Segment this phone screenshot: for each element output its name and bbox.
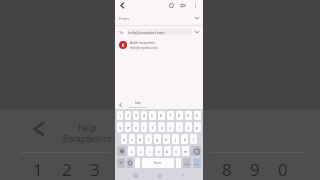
staticText: 3 bbox=[135, 113, 138, 118]
button[interactable]: More options bbox=[191, 1, 200, 10]
button[interactable]: n bbox=[173, 146, 180, 156]
button[interactable]: r bbox=[141, 122, 147, 132]
button[interactable]: , bbox=[135, 158, 140, 168]
staticText: 3 bbox=[90, 158, 100, 180]
staticText: 1 bbox=[33, 158, 43, 180]
button[interactable]: d bbox=[137, 134, 143, 144]
button[interactable]: Backspace bbox=[191, 146, 201, 156]
staticText: 8 bbox=[178, 113, 181, 118]
staticText: help@srapdesl.com bbox=[130, 46, 158, 50]
staticText: com bbox=[184, 162, 190, 165]
button[interactable]: Symbols bbox=[117, 158, 125, 168]
staticText: y bbox=[161, 125, 163, 130]
staticText: help@srapdesl.com bbox=[128, 30, 165, 35]
staticText: @srapdesl.com bbox=[129, 105, 147, 108]
button[interactable]: 2 bbox=[125, 111, 131, 120]
button[interactable]: o bbox=[185, 122, 192, 132]
button[interactable]: e bbox=[133, 122, 139, 132]
button[interactable]: 4 bbox=[141, 111, 147, 120]
button[interactable]: p bbox=[194, 122, 201, 132]
button[interactable]: z bbox=[128, 146, 135, 156]
button[interactable]: k bbox=[181, 134, 188, 144]
button[interactable]: Previous bbox=[118, 102, 124, 108]
button[interactable]: From bbox=[119, 11, 199, 25]
staticText: 5 bbox=[151, 113, 154, 118]
staticText: 9 bbox=[187, 113, 190, 118]
staticText: v bbox=[158, 149, 160, 154]
button[interactable]: . bbox=[176, 158, 181, 168]
button[interactable]: i bbox=[176, 122, 183, 132]
staticText: s bbox=[131, 137, 133, 142]
button[interactable]: w bbox=[125, 122, 131, 132]
button[interactable]: a bbox=[121, 134, 127, 144]
button[interactable]: f bbox=[145, 134, 152, 144]
button[interactable]: 6 bbox=[158, 111, 165, 120]
button[interactable]: Recents bbox=[131, 171, 139, 179]
staticText: m bbox=[184, 149, 188, 154]
button[interactable]: j bbox=[172, 134, 179, 144]
button[interactable]: u bbox=[167, 122, 174, 132]
button[interactable]: c bbox=[146, 146, 153, 156]
button[interactable]: h bbox=[163, 134, 170, 144]
button[interactable]: To bbox=[119, 26, 199, 38]
button[interactable]: 0 bbox=[194, 111, 201, 120]
button[interactable]: 3 bbox=[133, 111, 139, 120]
button[interactable]: Attach bbox=[167, 1, 176, 10]
button[interactable]: t bbox=[149, 122, 156, 132]
staticText: c bbox=[149, 149, 151, 154]
button[interactable]: 5 bbox=[149, 111, 156, 120]
button[interactable]: Home bbox=[155, 171, 163, 179]
staticText: heip bbox=[78, 121, 97, 133]
button[interactable]: 1 bbox=[117, 111, 123, 120]
button[interactable]: Send bbox=[179, 1, 188, 10]
staticText: 0 bbox=[196, 113, 199, 118]
staticText: Add recipient bbox=[130, 40, 155, 45]
button[interactable]: Back bbox=[118, 1, 127, 10]
button[interactable]: Enter bbox=[193, 158, 201, 168]
staticText: . bbox=[178, 161, 179, 166]
staticText: g bbox=[156, 137, 159, 142]
staticText: o bbox=[187, 125, 190, 130]
button[interactable]: y bbox=[158, 122, 165, 132]
staticText: 4 bbox=[143, 113, 146, 118]
button[interactable]: Space bbox=[142, 158, 174, 168]
button[interactable]: Shift bbox=[117, 146, 126, 156]
button[interactable]: Back bbox=[179, 171, 187, 179]
staticText: 1 bbox=[119, 113, 122, 118]
staticText: !#1 bbox=[119, 161, 124, 165]
staticText: a bbox=[123, 137, 125, 142]
button[interactable]: 7 bbox=[167, 111, 174, 120]
staticText: 8 bbox=[222, 158, 232, 180]
button[interactable]: g bbox=[154, 134, 161, 144]
button[interactable]: x bbox=[137, 146, 144, 156]
staticText: q bbox=[119, 125, 122, 130]
button[interactable]: v bbox=[155, 146, 162, 156]
staticText: b bbox=[166, 149, 169, 154]
button[interactable]: b bbox=[164, 146, 171, 156]
staticText: Go bbox=[195, 162, 199, 165]
staticText: p bbox=[196, 125, 199, 130]
staticText: i bbox=[179, 125, 180, 130]
button[interactable]: q bbox=[117, 122, 123, 132]
button[interactable]: Comma bbox=[183, 158, 191, 168]
staticText: @srapdesl.co bbox=[62, 133, 112, 144]
staticText: , bbox=[137, 161, 138, 166]
staticText: k bbox=[184, 137, 186, 142]
staticText: Bono bbox=[154, 161, 162, 165]
button[interactable]: Add recipient bbox=[119, 38, 199, 52]
staticText: 0 bbox=[278, 158, 288, 180]
button[interactable]: s bbox=[129, 134, 135, 144]
button[interactable]: 8 bbox=[176, 111, 183, 120]
button[interactable]: m bbox=[182, 146, 189, 156]
staticText: f bbox=[148, 137, 150, 142]
staticText: t bbox=[152, 125, 154, 130]
staticText: x bbox=[140, 149, 142, 154]
staticText: n bbox=[175, 149, 178, 154]
button[interactable]: Emoji bbox=[127, 158, 133, 168]
staticText: e bbox=[135, 125, 137, 130]
button[interactable]: l bbox=[190, 134, 197, 144]
staticText: w bbox=[127, 125, 130, 130]
staticText: z bbox=[131, 149, 133, 154]
button[interactable]: 9 bbox=[185, 111, 192, 120]
staticText: j bbox=[175, 137, 176, 142]
